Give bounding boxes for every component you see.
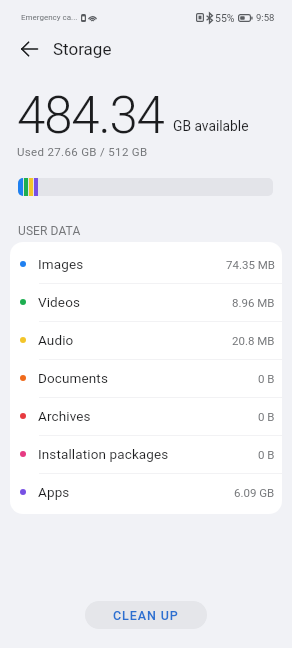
button[interactable]: Apps xyxy=(10,473,282,511)
button[interactable]: Videos xyxy=(10,283,282,321)
staticText: 0 B xyxy=(258,448,275,461)
staticText: Archives xyxy=(38,408,91,424)
staticText: Documents xyxy=(38,370,108,386)
staticText: 74.35 MB xyxy=(226,258,275,271)
staticText: 20.8 MB xyxy=(232,334,275,347)
button[interactable]: Installation packages xyxy=(10,435,282,473)
staticText: Installation packages xyxy=(38,446,169,462)
button[interactable]: CLEAN UP xyxy=(85,601,207,629)
staticText: CLEAN UP xyxy=(113,608,179,623)
button[interactable]: Back xyxy=(13,35,45,63)
button[interactable]: Audio xyxy=(10,321,282,359)
staticText: Used 27.66 GB / 512 GB xyxy=(17,145,148,158)
staticText: 0 B xyxy=(258,410,275,423)
staticText: Videos xyxy=(38,294,81,310)
staticText: Audio xyxy=(38,332,74,348)
button[interactable]: Archives xyxy=(10,397,282,435)
button[interactable]: Images xyxy=(10,245,282,283)
staticText: GB available xyxy=(173,118,249,134)
staticText: Storage xyxy=(53,39,112,59)
staticText: 8.96 MB xyxy=(232,296,275,309)
staticText: USER DATA xyxy=(18,224,81,238)
staticText: 9:58 xyxy=(256,12,275,23)
staticText: 484.34 xyxy=(17,86,164,146)
staticText: 0 B xyxy=(258,372,275,385)
button[interactable]: Documents xyxy=(10,359,282,397)
staticText: 6.09 GB xyxy=(234,486,275,499)
staticText: Emergency ca... xyxy=(21,13,78,22)
staticText: 55% xyxy=(215,12,235,24)
staticText: Apps xyxy=(38,484,70,500)
staticText: Images xyxy=(38,256,84,272)
